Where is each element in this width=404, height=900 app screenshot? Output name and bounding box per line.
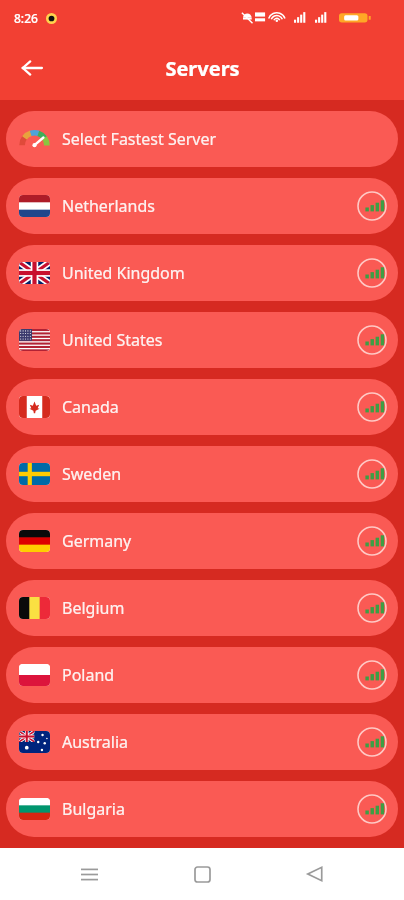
staticText: Canada — [62, 396, 357, 418]
button[interactable]: Recent apps — [65, 850, 113, 898]
button[interactable]: Netherlands — [6, 178, 398, 234]
button[interactable]: Australia — [6, 714, 398, 770]
button[interactable]: United Kingdom — [6, 245, 398, 301]
button[interactable]: Germany — [6, 513, 398, 569]
staticText: United Kingdom — [62, 262, 357, 284]
button[interactable]: Canada — [6, 379, 398, 435]
staticText: Bulgaria — [62, 798, 357, 820]
staticText: United States — [62, 329, 357, 351]
button[interactable]: United States — [6, 312, 398, 368]
staticText: Sweden — [62, 463, 357, 485]
button[interactable]: Select Fastest Server — [6, 111, 398, 167]
button[interactable]: Poland — [6, 647, 398, 703]
staticText: Select Fastest Server — [62, 128, 387, 150]
staticText: 8:26 — [14, 10, 38, 26]
button[interactable]: Back — [10, 46, 54, 90]
button[interactable]: Sweden — [6, 446, 398, 502]
staticText: Servers — [165, 55, 240, 82]
staticText: Netherlands — [62, 195, 357, 217]
button[interactable]: Home — [178, 850, 226, 898]
button[interactable]: Belgium — [6, 580, 398, 636]
button[interactable]: Back — [291, 850, 339, 898]
button[interactable]: Bulgaria — [6, 781, 398, 837]
staticText: Belgium — [62, 597, 357, 619]
staticText: Germany — [62, 530, 357, 552]
staticText: Australia — [62, 731, 357, 753]
staticText: Poland — [62, 664, 357, 686]
